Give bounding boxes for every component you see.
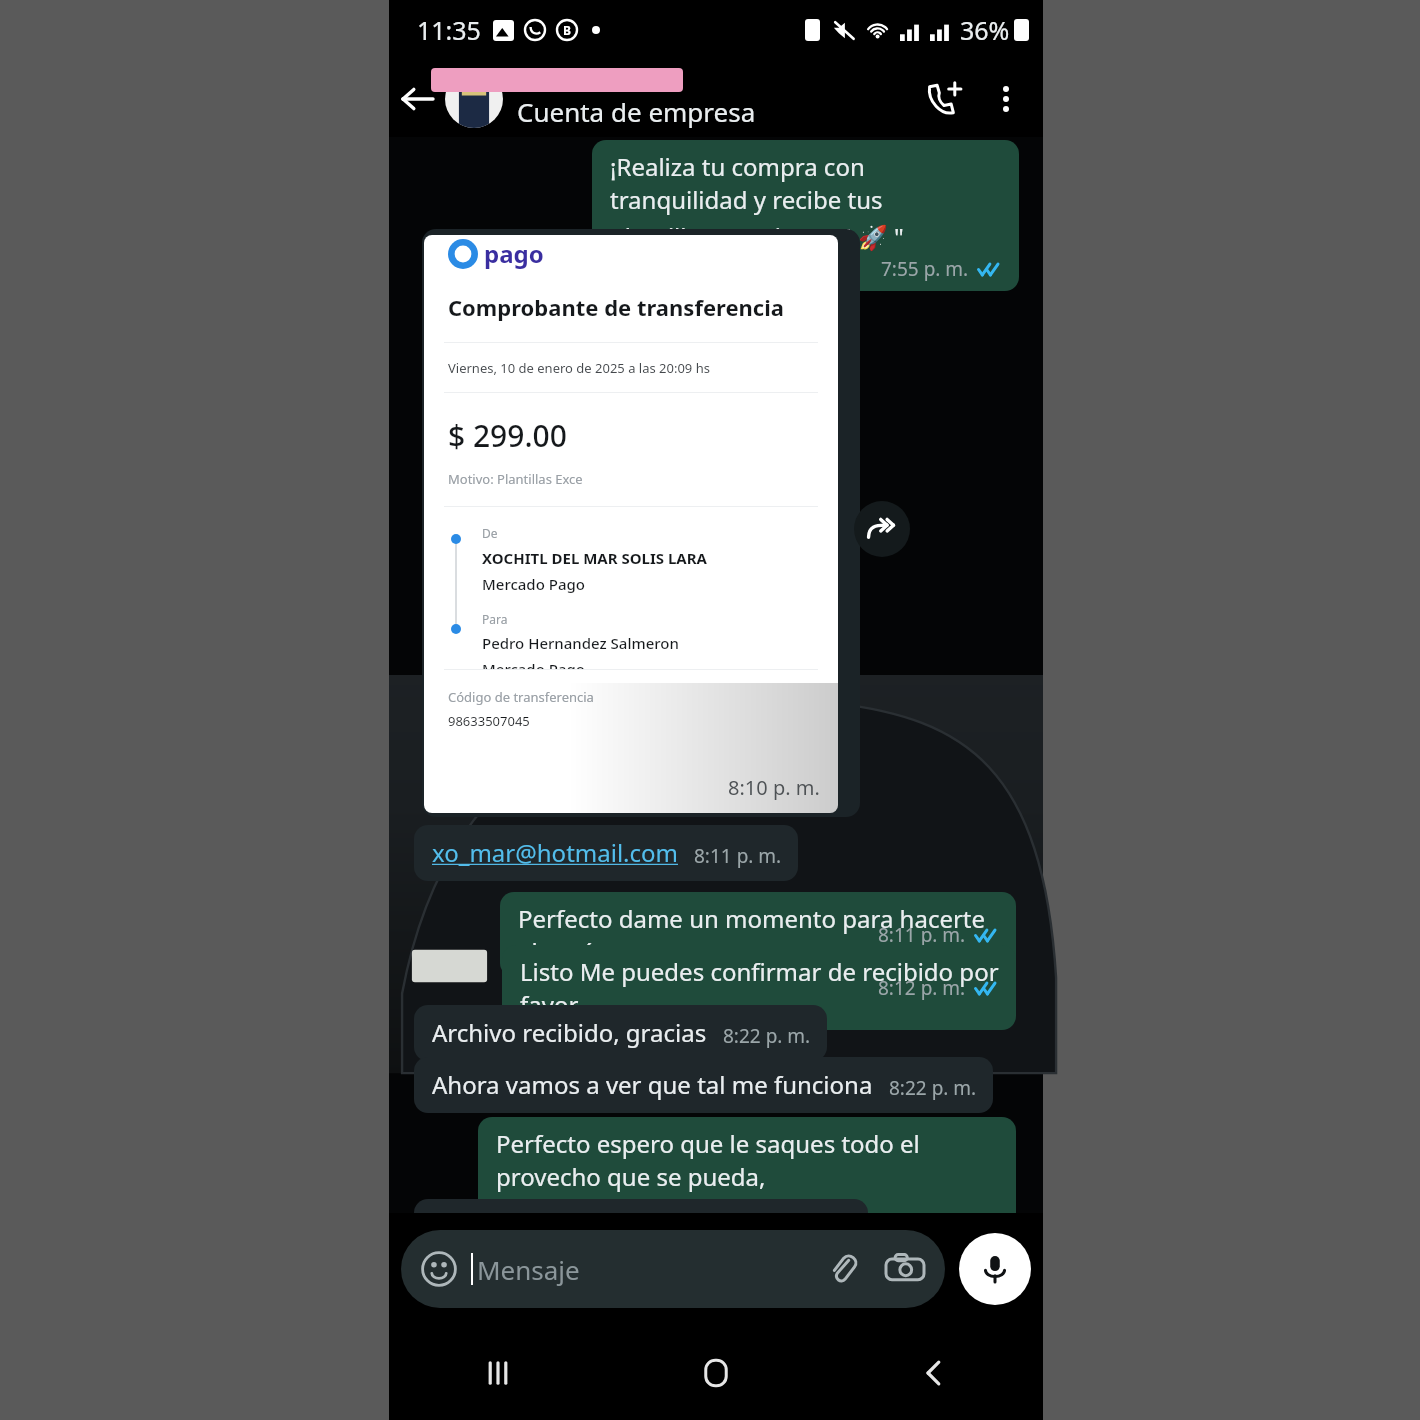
staticText: De	[482, 525, 498, 541]
staticText: 7:55 p. m.	[881, 256, 969, 282]
staticText: 98633507045	[448, 712, 530, 730]
button[interactable]: Voice message	[959, 1233, 1031, 1305]
button[interactable]: Attach	[821, 1247, 865, 1291]
staticText: Archivo recibido, gracias	[432, 1016, 707, 1049]
staticText: xo_mar@hotmail.com	[432, 836, 678, 869]
staticText: plantillas en minutos! 🚀 "	[610, 220, 904, 253]
button[interactable]: Video call	[911, 66, 977, 132]
staticText: 8:25 p. m.	[764, 1217, 852, 1243]
staticText: Código de transferencia	[448, 688, 594, 706]
staticText: 8:12 p. m.	[878, 975, 966, 1001]
staticText: Pedro Hernandez Salmeron	[482, 633, 679, 653]
button[interactable]: Muchas gracias, igualmente	[414, 1199, 868, 1255]
staticText: Viernes, 10 de enero de 2025 a las 20:09…	[448, 359, 710, 377]
staticText: Mercado Pago	[482, 574, 585, 594]
button[interactable]: Cuenta de empresa	[445, 60, 911, 137]
staticText: ¡Realiza tu compra con tranquilidad y re…	[610, 150, 1005, 216]
staticText: pago	[484, 237, 544, 270]
button[interactable]: Back	[389, 71, 445, 127]
staticText: B	[563, 22, 571, 38]
button[interactable]: Back	[895, 1334, 973, 1412]
button[interactable]: Ahora vamos a ver que tal me funciona	[414, 1057, 993, 1113]
staticText: Listo Me puedes confirmar de recibido po…	[520, 955, 1002, 1021]
staticText: Cuenta de empresa	[517, 94, 756, 129]
button[interactable]: ¡Realiza tu compra con tranquilidad y re…	[592, 140, 1019, 291]
button[interactable]: xo_mar@hotmail.com	[414, 825, 798, 881]
button[interactable]: Perfecto espero que le saques todo el pr…	[478, 1117, 1016, 1268]
staticText: 8:11 p. m.	[694, 843, 782, 869]
staticText: Perfecto espero que le saques todo el pr…	[496, 1127, 1002, 1193]
button[interactable]: Listo Me puedes confirmar de recibido po…	[502, 945, 1016, 1030]
staticText: 8:10 p. m.	[728, 774, 820, 801]
staticText: Mensaje	[477, 1252, 580, 1287]
staticText: 36%	[960, 13, 1010, 47]
staticText: Comprobante de transferencia	[448, 292, 784, 322]
staticText: $ 299.00	[448, 415, 567, 456]
button[interactable]: Emoji	[419, 1249, 459, 1289]
staticText: 8:22 p. m.	[889, 1075, 977, 1101]
staticText: que tengas un excelente noche	[496, 1197, 847, 1230]
button[interactable]: Camera	[883, 1247, 927, 1291]
button[interactable]: Home	[677, 1334, 755, 1412]
staticText: Perfecto dame un momento para hacerte el…	[518, 902, 1002, 968]
button[interactable]: Archivo recibido, gracias	[414, 1005, 827, 1061]
staticText: 11:35	[417, 13, 481, 47]
staticText: Motivo: Plantillas Exce	[448, 470, 583, 488]
staticText: Para	[482, 611, 508, 627]
button[interactable]: Transfer receipt image	[422, 229, 860, 817]
button[interactable]: Emoji	[401, 1230, 945, 1308]
staticText: Mercado Pago	[482, 659, 585, 669]
button[interactable]: More options	[977, 70, 1035, 128]
staticText: Muchas gracias, igualmente	[432, 1210, 748, 1243]
button[interactable]: Recents	[459, 1334, 537, 1412]
staticText: 8:24 p. m.	[878, 1233, 966, 1259]
staticText: 8:11 p. m.	[878, 922, 966, 948]
button[interactable]: Perfecto dame un momento para hacerte el…	[500, 892, 1016, 977]
staticText: 8:22 p. m.	[723, 1023, 811, 1049]
staticText: Ahora vamos a ver que tal me funciona	[432, 1068, 873, 1101]
button[interactable]: Forward	[854, 501, 910, 557]
staticText: XOCHITL DEL MAR SOLIS LARA	[482, 548, 707, 568]
